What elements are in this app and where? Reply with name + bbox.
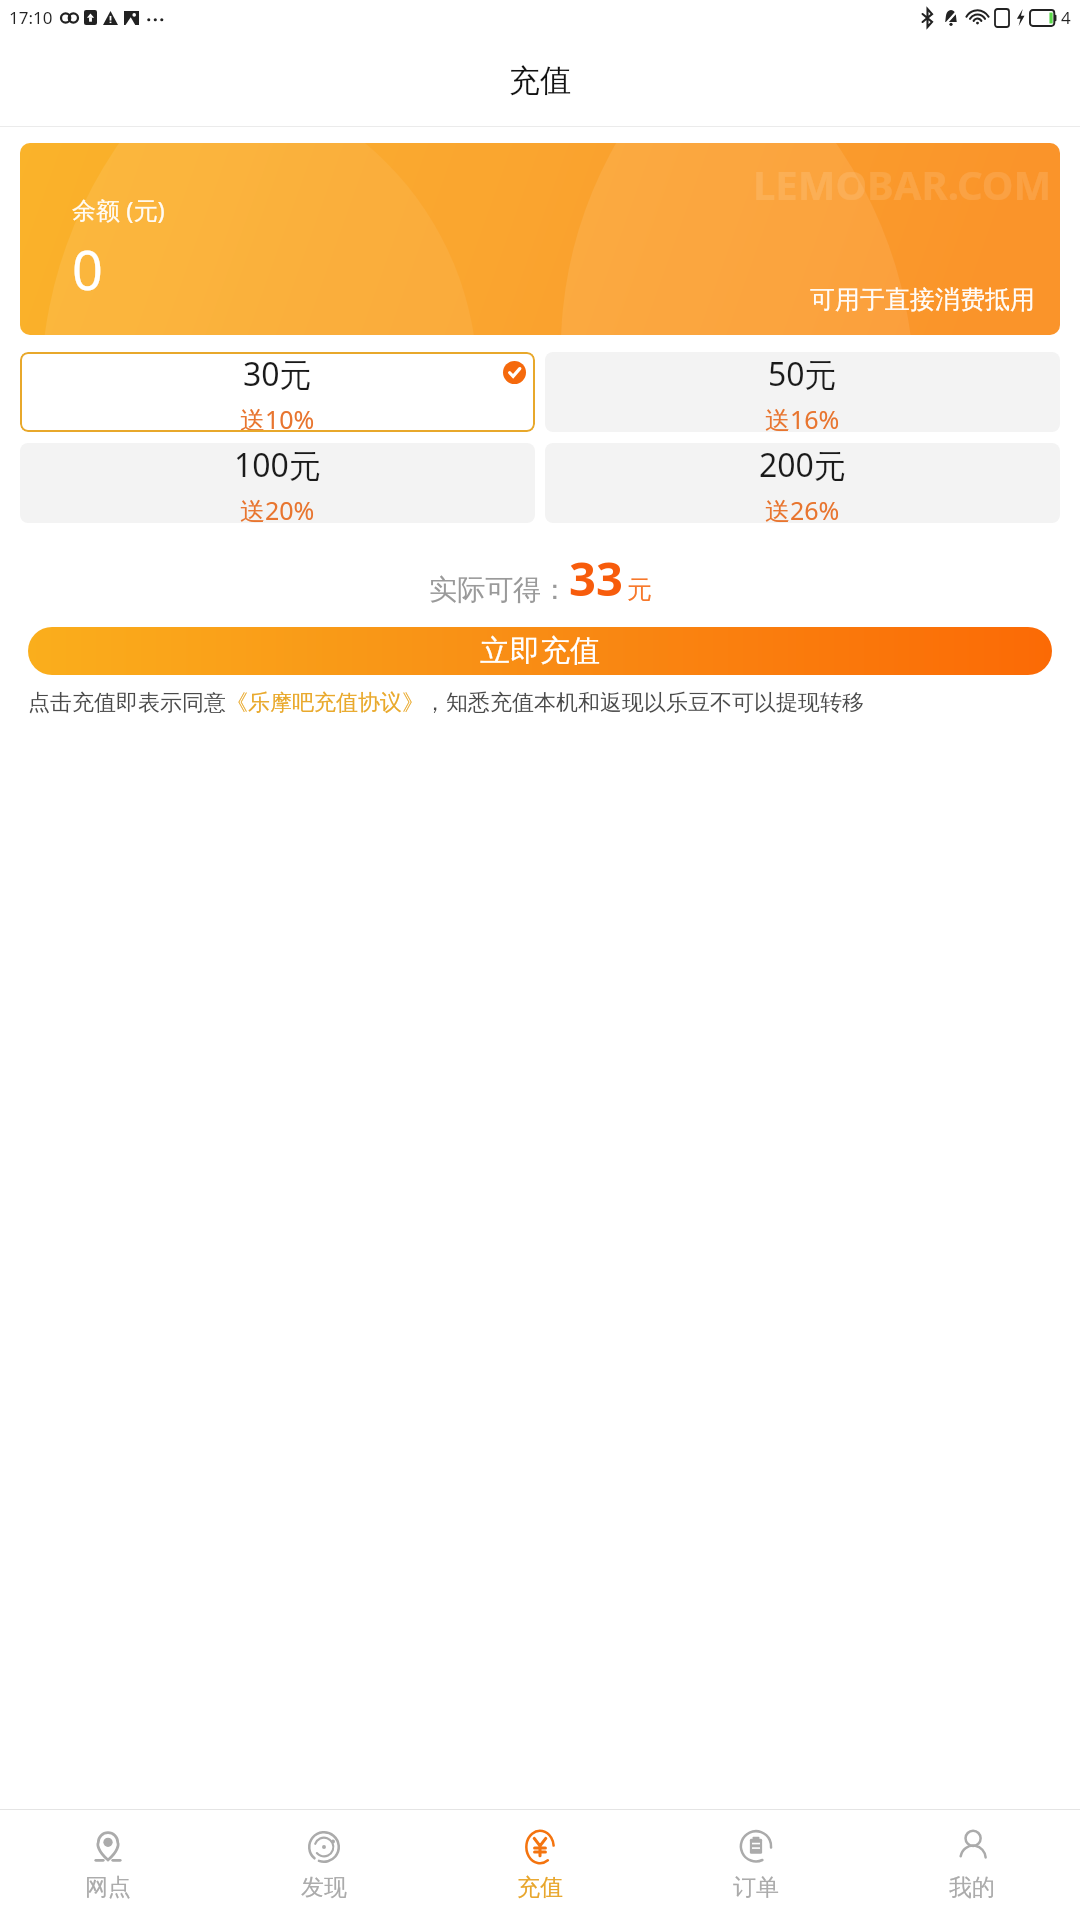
- staticText: LEMOBAR.COM: [753, 157, 1052, 211]
- button[interactable]: 发现: [216, 1825, 432, 1906]
- staticText: 50元: [768, 352, 837, 396]
- staticText: 4: [1061, 6, 1071, 29]
- staticText: 我的: [949, 1873, 995, 1902]
- button[interactable]: LEMOBAR.COM: [20, 143, 1060, 335]
- button[interactable]: 订单: [648, 1825, 864, 1906]
- button[interactable]: 网点: [0, 1825, 216, 1906]
- button[interactable]: 充值: [432, 1825, 648, 1906]
- staticText: 200元: [759, 443, 846, 487]
- staticText: 点击充值即表示同意《乐摩吧充值协议》，知悉充值本机和返现以乐豆不可以提现转移: [28, 689, 864, 717]
- staticText: 0: [72, 232, 103, 306]
- staticText: 送26%: [765, 493, 840, 523]
- staticText: 立即充值: [480, 632, 600, 670]
- button[interactable]: 30元: [20, 352, 535, 432]
- button[interactable]: 50元: [545, 352, 1060, 432]
- button[interactable]: 我的: [864, 1825, 1080, 1906]
- staticText: 发现: [301, 1873, 347, 1902]
- staticText: 送10%: [240, 402, 315, 432]
- button[interactable]: 立即充值: [28, 627, 1052, 675]
- staticText: 33: [569, 546, 623, 610]
- button[interactable]: 200元: [545, 443, 1060, 523]
- other: 网点: [90, 1829, 126, 1865]
- staticText: 余额 (元): [72, 193, 165, 226]
- staticText: 网点: [85, 1873, 131, 1902]
- staticText: 充值: [517, 1873, 563, 1902]
- staticText: 充值: [509, 61, 571, 100]
- button[interactable]: 100元: [20, 443, 535, 523]
- staticText: 30元: [243, 352, 312, 396]
- button[interactable]: 点击充值即表示同意《乐摩吧充值协议》，知悉充值本机和返现以乐豆不可以提现转移: [28, 689, 1052, 717]
- staticText: 订单: [733, 1873, 779, 1902]
- other: 充值: [522, 1829, 558, 1865]
- staticText: 100元: [234, 443, 321, 487]
- staticText: 实际可得：: [429, 572, 569, 607]
- staticText: 元: [627, 574, 652, 605]
- other: 我的: [954, 1829, 990, 1865]
- other: 发现: [306, 1829, 342, 1865]
- staticText: 送20%: [240, 493, 315, 523]
- staticText: 可用于直接消费抵用: [810, 284, 1035, 315]
- staticText: 送16%: [765, 402, 840, 432]
- staticText: 17:10: [9, 6, 53, 29]
- other: 订单: [738, 1829, 774, 1865]
